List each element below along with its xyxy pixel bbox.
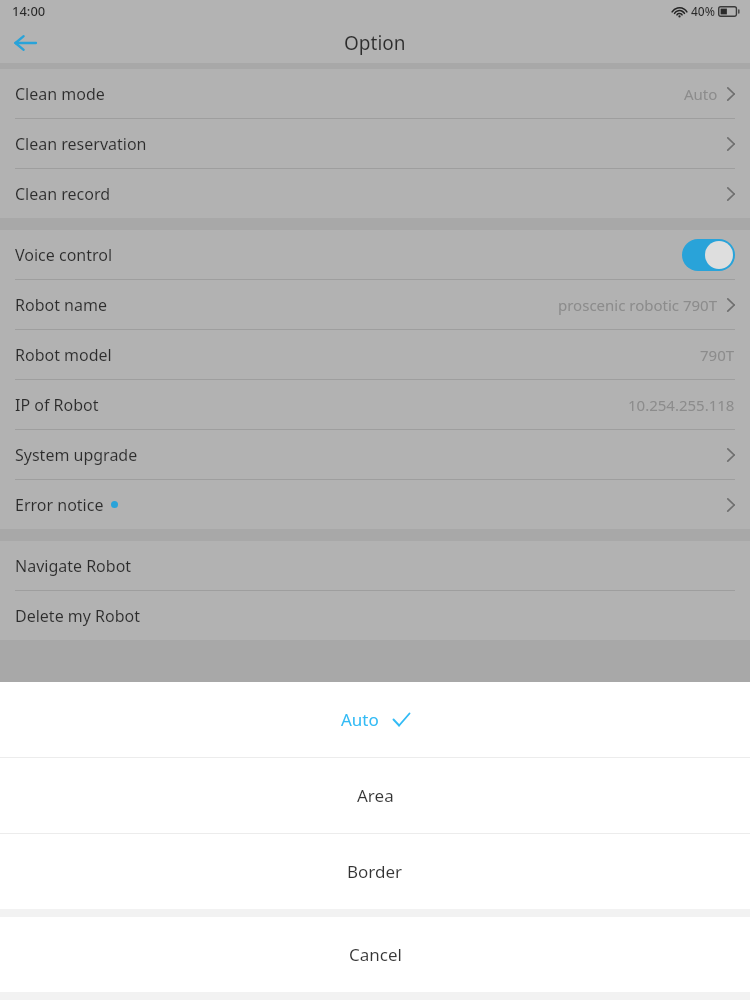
button[interactable]: Error notice (0, 480, 750, 529)
staticText: Cancel (349, 943, 402, 966)
button[interactable]: Delete my Robot (0, 591, 750, 640)
staticText: System upgrade (15, 444, 138, 466)
button[interactable]: Cancel (0, 917, 750, 992)
staticText: Border (347, 860, 403, 883)
staticText: Area (357, 784, 394, 807)
staticText: Clean mode (15, 83, 105, 105)
button[interactable]: Back (0, 22, 50, 63)
staticText: 790T (700, 345, 735, 365)
button[interactable]: Navigate Robot (0, 541, 750, 590)
button[interactable]: Robot model (0, 330, 750, 379)
button[interactable]: Border (0, 834, 750, 909)
staticText: Robot name (15, 294, 107, 316)
staticText: proscenic robotic 790T (558, 295, 718, 315)
button[interactable]: Voice control toggle, on (682, 239, 735, 271)
staticText: Auto (684, 84, 718, 104)
staticText: 14:00 (12, 2, 46, 20)
staticText: Clean record (15, 183, 111, 205)
staticText: Error notice (15, 494, 104, 516)
button[interactable]: System upgrade (0, 430, 750, 479)
staticText: Robot model (15, 344, 112, 366)
staticText: Voice control (15, 244, 113, 266)
staticText: Navigate Robot (15, 555, 132, 577)
staticText: Option (344, 30, 406, 56)
button[interactable]: Auto (0, 682, 750, 757)
staticText: Delete my Robot (15, 605, 141, 627)
button[interactable]: Robot name (0, 280, 750, 329)
staticText: Clean reservation (15, 133, 147, 155)
button[interactable]: IP of Robot (0, 380, 750, 429)
staticText: 10.254.255.118 (628, 395, 735, 415)
button[interactable]: Clean reservation (0, 119, 750, 168)
staticText: IP of Robot (15, 394, 99, 416)
staticText: Auto (341, 708, 379, 731)
button[interactable]: Voice control (0, 230, 750, 279)
button[interactable]: Clean record (0, 169, 750, 218)
staticText: 40% (691, 3, 715, 19)
button[interactable]: Area (0, 758, 750, 833)
button[interactable]: Clean mode (0, 69, 750, 118)
